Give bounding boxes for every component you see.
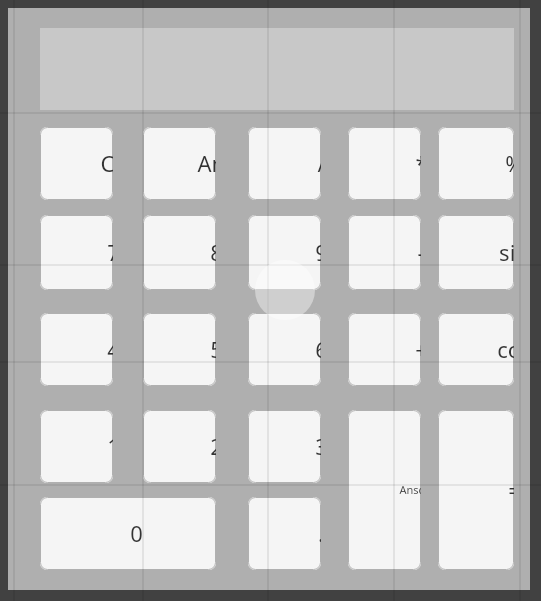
staticText: Ansclear xyxy=(399,482,421,497)
staticText: CE xyxy=(100,148,113,178)
staticText: 3 xyxy=(315,431,321,461)
button[interactable]: . xyxy=(248,497,321,570)
button[interactable]: 9 xyxy=(248,215,321,290)
staticText: 5 xyxy=(210,334,216,364)
staticText: 0 xyxy=(130,518,143,548)
button[interactable]: 2 xyxy=(143,410,216,483)
staticText: 1 xyxy=(107,431,113,461)
button[interactable]: Ansclear xyxy=(348,410,421,570)
button[interactable]: 3 xyxy=(248,410,321,483)
staticText: 7 xyxy=(107,237,113,267)
button[interactable]: % xyxy=(438,127,514,200)
button[interactable]: + xyxy=(348,313,421,386)
button[interactable]: 8 xyxy=(143,215,216,290)
button[interactable]: 4 xyxy=(40,313,113,386)
staticText: + xyxy=(415,334,421,364)
staticText: Ans xyxy=(197,148,216,178)
staticText: 9 xyxy=(315,237,321,267)
button[interactable]: cos xyxy=(438,313,514,386)
button[interactable]: Ans xyxy=(143,127,216,200)
staticText: % xyxy=(505,148,514,178)
button[interactable]: * xyxy=(348,127,421,200)
button[interactable]: sin xyxy=(438,215,514,290)
button[interactable]: 1 xyxy=(40,410,113,483)
button[interactable]: = xyxy=(438,410,514,570)
staticText: 4 xyxy=(107,334,113,364)
staticText: sin xyxy=(499,237,514,267)
button[interactable]: / xyxy=(248,127,321,200)
button[interactable]: 0 xyxy=(40,497,216,570)
staticText: * xyxy=(415,148,421,178)
staticText: . xyxy=(318,518,321,548)
staticText: / xyxy=(317,148,321,178)
button[interactable]: 6 xyxy=(248,313,321,386)
staticText: = xyxy=(508,475,514,505)
button[interactable]: CE xyxy=(40,127,113,200)
button[interactable]: 5 xyxy=(143,313,216,386)
staticText: 2 xyxy=(210,431,216,461)
staticText: cos xyxy=(497,334,514,364)
staticText: 8 xyxy=(210,237,216,267)
staticText: - xyxy=(417,237,421,267)
staticText: 6 xyxy=(315,334,321,364)
button[interactable]: - xyxy=(348,215,421,290)
button[interactable]: 7 xyxy=(40,215,113,290)
